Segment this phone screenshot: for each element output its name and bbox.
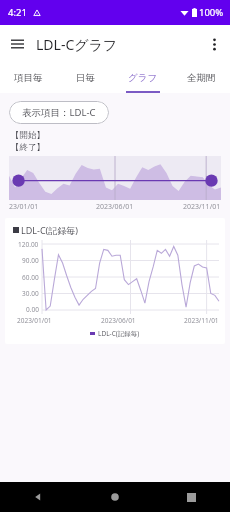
button[interactable]: 項目毎 <box>0 63 57 93</box>
staticText: 日毎 <box>76 72 95 84</box>
staticText: 表示項目：LDL-C <box>22 106 96 119</box>
button[interactable]: Home <box>76 482 153 512</box>
staticText: 2023/11/01 <box>184 316 219 325</box>
staticText: 4:21 <box>8 6 27 19</box>
staticText: 120.00 <box>18 240 39 249</box>
staticText: 2023/06/01 <box>101 316 136 325</box>
button[interactable]: Recent apps <box>153 482 230 512</box>
button[interactable]: More options <box>198 28 230 60</box>
staticText: LDL-Cグラフ <box>36 35 118 54</box>
staticText: 30.00 <box>22 289 39 298</box>
staticText: 【終了】 <box>11 142 45 153</box>
staticText: 90.00 <box>22 256 39 265</box>
button[interactable]: 日毎 <box>57 63 114 93</box>
staticText: 項目毎 <box>14 72 43 84</box>
button[interactable]: 全期間 <box>172 63 230 93</box>
staticText: 100% <box>199 6 224 19</box>
staticText: LDL-C(記録毎) <box>98 329 140 338</box>
button[interactable]: 表示項目：LDL-C <box>9 101 109 124</box>
staticText: 23/01/01 <box>9 202 39 212</box>
staticText: 60.00 <box>22 273 39 282</box>
button[interactable]: Open navigation menu <box>0 27 34 61</box>
staticText: 2023/06/01 <box>96 202 134 212</box>
button[interactable]: グラフ <box>114 63 172 93</box>
staticText: LDL-C(記録毎) <box>21 224 78 236</box>
button[interactable]: Date range selector <box>9 156 221 200</box>
staticText: 2023/11/01 <box>183 202 221 212</box>
staticText: 【開始】 <box>11 130 45 141</box>
staticText: グラフ <box>128 72 158 84</box>
staticText: 全期間 <box>187 72 216 84</box>
button[interactable]: Back <box>0 482 76 512</box>
staticText: 2023/01/01 <box>17 316 52 325</box>
staticText: 0.00 <box>26 305 39 314</box>
